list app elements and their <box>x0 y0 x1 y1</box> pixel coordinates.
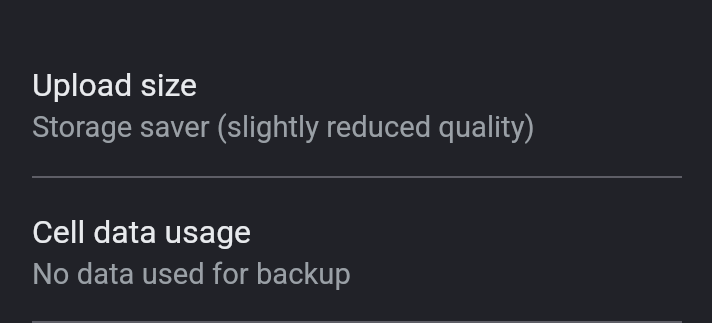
button[interactable]: Upload size <box>0 0 712 176</box>
button[interactable]: Cell data usage <box>0 178 712 321</box>
staticText: Cell data usage <box>32 213 252 251</box>
staticText: Storage saver (slightly reduced quality) <box>32 110 535 144</box>
staticText: No data used for backup <box>32 257 351 291</box>
staticText: Upload size <box>32 66 198 104</box>
